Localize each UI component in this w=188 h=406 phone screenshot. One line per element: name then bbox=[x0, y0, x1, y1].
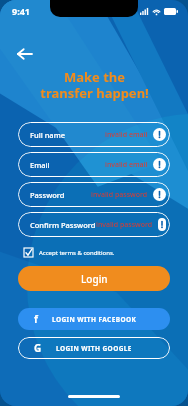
staticText: invalid email bbox=[105, 160, 148, 170]
staticText: invalid email bbox=[105, 130, 148, 140]
staticText: Make the transfer happen! bbox=[40, 68, 149, 101]
button[interactable]: Back bbox=[10, 40, 38, 68]
staticText: Email bbox=[30, 160, 50, 170]
staticText: Password bbox=[30, 190, 65, 200]
button[interactable]: Login bbox=[18, 266, 170, 291]
staticText: LOGIN WITH FACEBOOK bbox=[52, 315, 137, 324]
staticText: Full name bbox=[30, 130, 66, 140]
button[interactable]: Accept terms & conditions. bbox=[18, 246, 170, 259]
staticText: f bbox=[34, 312, 38, 326]
staticText: Confirm Password bbox=[30, 220, 96, 230]
staticText: G bbox=[34, 341, 42, 355]
button[interactable]: f bbox=[18, 308, 170, 330]
button[interactable]: Password bbox=[18, 182, 170, 207]
button[interactable]: Full name bbox=[18, 122, 170, 147]
staticText: Accept terms & conditions. bbox=[39, 249, 115, 257]
staticText: Login bbox=[81, 272, 108, 286]
staticText: LOGIN WITH GOOGLE bbox=[56, 344, 132, 353]
button[interactable]: Confirm Password bbox=[18, 212, 170, 237]
staticText: invalid password bbox=[96, 220, 153, 230]
button[interactable]: G bbox=[18, 337, 170, 359]
staticText: 9:41 bbox=[12, 5, 30, 17]
button[interactable]: Email bbox=[18, 152, 170, 177]
staticText: invalid password bbox=[91, 190, 148, 200]
